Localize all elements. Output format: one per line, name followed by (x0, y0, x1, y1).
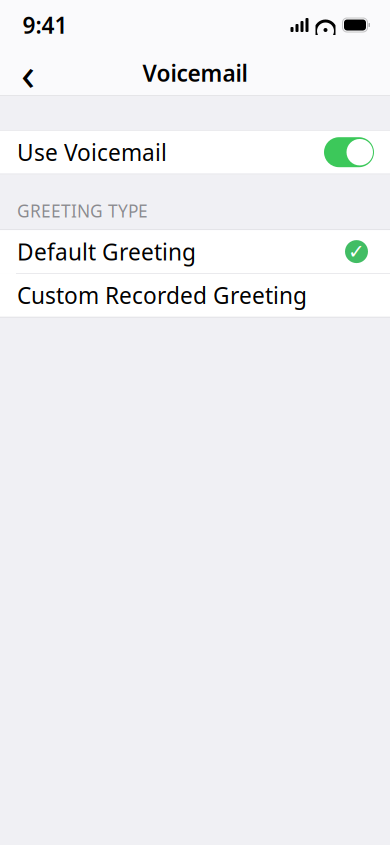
staticText: GREETING TYPE (17, 199, 148, 222)
button[interactable]: Back (6, 51, 50, 95)
staticText: ‹ (21, 43, 35, 103)
staticText: Use Voicemail (17, 137, 167, 167)
button[interactable]: Custom Recorded Greeting (0, 274, 390, 317)
staticText: 9:41 (22, 10, 67, 40)
staticText: Custom Recorded Greeting (17, 280, 307, 310)
staticText: ✓ (348, 240, 365, 263)
button[interactable]: Use Voicemail (0, 131, 390, 174)
staticText: Default Greeting (17, 236, 196, 267)
button[interactable]: Default Greeting (0, 230, 390, 273)
staticText: Voicemail (142, 58, 247, 88)
